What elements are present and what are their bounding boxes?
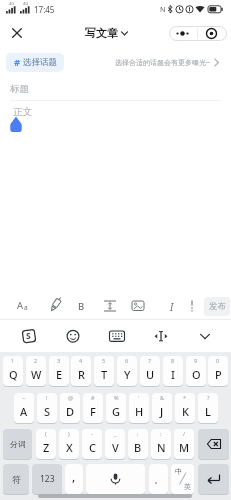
staticText: L bbox=[205, 404, 211, 419]
button[interactable]: 7 bbox=[140, 356, 160, 386]
staticText: 分词 bbox=[10, 439, 26, 449]
staticText: O bbox=[192, 367, 201, 382]
button[interactable]: # bbox=[6, 53, 64, 72]
button[interactable]: 4 bbox=[71, 356, 91, 386]
staticText: ( bbox=[45, 430, 47, 437]
button[interactable] bbox=[169, 26, 197, 41]
button[interactable]: 。 bbox=[149, 464, 168, 494]
button[interactable]: ; bbox=[128, 429, 148, 459]
button[interactable]: 2 bbox=[26, 356, 46, 386]
staticText: A bbox=[17, 299, 24, 312]
button[interactable]: / bbox=[174, 429, 194, 459]
button[interactable]: - bbox=[82, 429, 102, 459]
staticText: 4 bbox=[79, 357, 83, 364]
staticText: * bbox=[183, 394, 187, 401]
staticText: 符 bbox=[12, 474, 21, 485]
staticText: @ bbox=[68, 394, 73, 401]
button[interactable]: A bbox=[17, 299, 28, 312]
staticText: 7 bbox=[148, 357, 152, 364]
staticText: , bbox=[72, 468, 76, 484]
button[interactable]: & bbox=[152, 393, 172, 423]
button[interactable]: 6 bbox=[117, 356, 137, 386]
staticText: ' bbox=[138, 394, 140, 401]
staticText: ) bbox=[68, 430, 70, 437]
staticText: C bbox=[89, 440, 96, 455]
button[interactable]: 1 bbox=[3, 356, 23, 386]
button[interactable]: 123 bbox=[32, 464, 62, 494]
staticText: 2 bbox=[34, 357, 38, 364]
button[interactable] bbox=[198, 464, 229, 494]
button[interactable] bbox=[198, 26, 226, 41]
button[interactable] bbox=[6, 22, 28, 44]
button[interactable]: 分词 bbox=[3, 429, 32, 459]
button[interactable]: ' bbox=[129, 393, 149, 423]
button[interactable] bbox=[152, 325, 174, 347]
staticText: Z bbox=[43, 440, 50, 455]
button[interactable]: 选择合适的话题会有更多曝光~ bbox=[100, 53, 225, 72]
button[interactable]: 中 bbox=[171, 464, 194, 494]
staticText: 写文章 bbox=[85, 26, 118, 40]
staticText: V bbox=[112, 440, 119, 455]
staticText: K bbox=[182, 404, 189, 419]
button[interactable]: * bbox=[175, 393, 195, 423]
staticText: I bbox=[171, 367, 175, 382]
staticText: M bbox=[179, 440, 190, 455]
button[interactable] bbox=[20, 325, 42, 347]
staticText: N bbox=[157, 440, 166, 455]
button[interactable] bbox=[198, 429, 229, 459]
button[interactable]: ! bbox=[37, 393, 57, 423]
staticText: W bbox=[31, 367, 42, 382]
button[interactable]: B bbox=[78, 300, 85, 313]
staticText: 3 bbox=[57, 357, 61, 364]
button[interactable]: 9 bbox=[186, 356, 206, 386]
staticText: 4G bbox=[23, 1, 29, 6]
button[interactable] bbox=[86, 464, 145, 494]
staticText: ! bbox=[46, 394, 48, 401]
staticText: - bbox=[91, 430, 93, 437]
staticText: / bbox=[183, 430, 186, 437]
button[interactable]: % bbox=[106, 393, 126, 423]
button[interactable] bbox=[64, 325, 86, 347]
staticText: U bbox=[146, 367, 155, 382]
staticText: X bbox=[66, 440, 73, 455]
button[interactable] bbox=[196, 325, 218, 347]
staticText: D bbox=[66, 404, 75, 419]
staticText: Q bbox=[9, 367, 18, 382]
button[interactable]: 发布 bbox=[204, 297, 230, 316]
staticText: N bbox=[160, 5, 166, 15]
staticText: E bbox=[56, 367, 63, 382]
staticText: ? bbox=[207, 394, 210, 401]
staticText: A bbox=[20, 404, 28, 419]
button[interactable]: ( bbox=[36, 429, 56, 459]
button[interactable]: 5 bbox=[94, 356, 114, 386]
staticText: J bbox=[160, 404, 164, 419]
staticText: F bbox=[90, 404, 96, 419]
button[interactable]: 3 bbox=[49, 356, 69, 386]
staticText: # bbox=[91, 394, 95, 401]
button[interactable]: I bbox=[170, 300, 174, 314]
button[interactable] bbox=[108, 325, 130, 347]
button[interactable]: 写文章 bbox=[78, 24, 134, 42]
staticText: _ bbox=[114, 430, 117, 437]
button[interactable]: ) bbox=[59, 429, 79, 459]
staticText: 17:45 bbox=[34, 4, 55, 15]
button[interactable]: : bbox=[151, 429, 171, 459]
staticText: 123 bbox=[40, 473, 55, 485]
staticText: : bbox=[160, 430, 162, 437]
staticText: S bbox=[26, 330, 31, 342]
button[interactable]: 0 bbox=[208, 356, 228, 386]
button[interactable]: ? bbox=[198, 393, 218, 423]
staticText: 9 bbox=[194, 357, 198, 364]
button[interactable]: _ bbox=[105, 429, 125, 459]
button[interactable]: 8 bbox=[163, 356, 183, 386]
staticText: ; bbox=[137, 430, 139, 437]
button[interactable]: 符 bbox=[3, 464, 29, 494]
staticText: R bbox=[78, 367, 85, 382]
staticText: 英 bbox=[184, 482, 191, 491]
button[interactable]: , bbox=[65, 464, 83, 494]
button[interactable]: ~ bbox=[14, 393, 34, 423]
staticText: # bbox=[14, 56, 21, 69]
staticText: 5 bbox=[102, 357, 106, 364]
button[interactable]: @ bbox=[60, 393, 80, 423]
button[interactable]: # bbox=[83, 393, 103, 423]
